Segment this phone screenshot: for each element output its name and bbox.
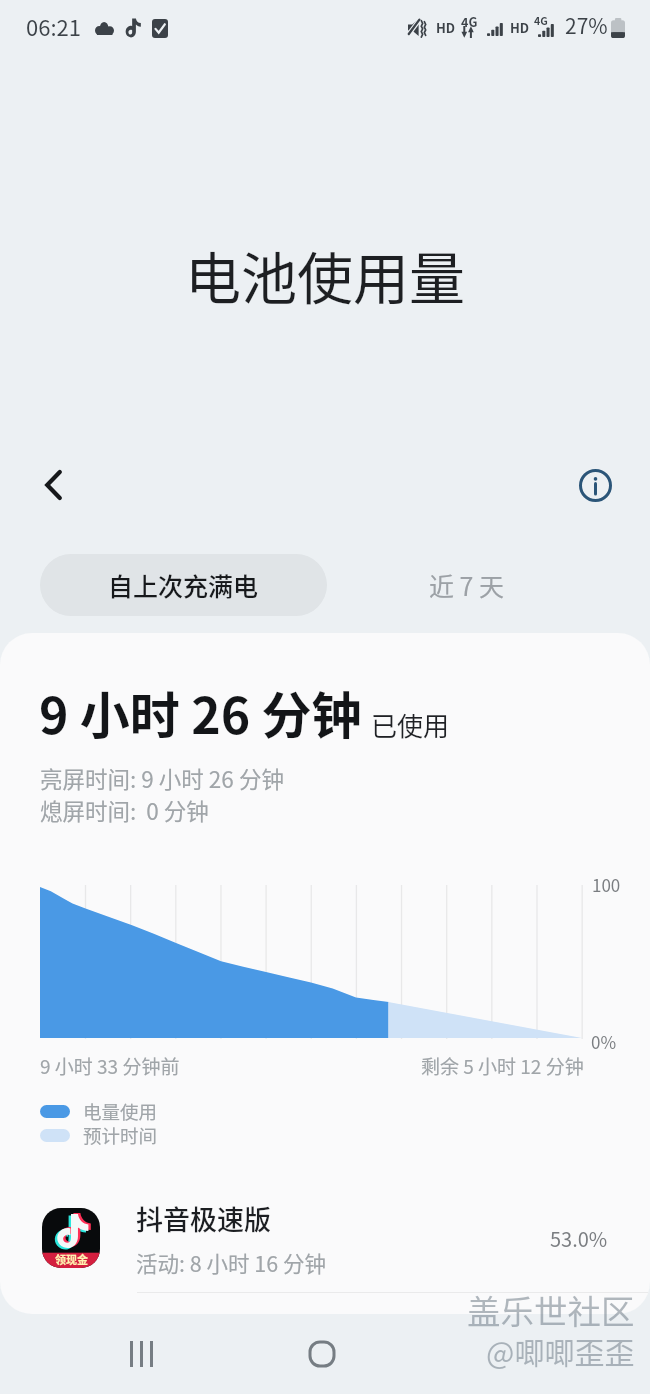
staticText: 盖乐世社区 [467,1285,635,1334]
staticText: 亮屏时间: 9 小时 26 分钟 [40,762,284,795]
staticText: HD [510,18,530,37]
staticText: HD [436,18,456,37]
staticText: 电池使用量 [185,234,465,315]
staticText: 4G [534,13,548,28]
staticText: 领现金 [55,1251,88,1267]
staticText: 预计时间 [83,1122,158,1149]
button[interactable]: 领现金 [0,1184,650,1292]
staticText: 4G [461,12,478,30]
staticText: 熄屏时间: 0 分钟 [40,794,209,827]
button[interactable]: Information [562,452,628,518]
staticText: 近 7 天 [429,567,505,603]
button[interactable]: Recent apps [109,1322,173,1386]
staticText: 自上次充满电 [108,567,259,603]
staticText: 53.0% [550,1224,608,1253]
staticText: 活动: 8 小时 16 分钟 [136,1247,327,1278]
button[interactable]: 自上次充满电 [40,554,327,616]
button[interactable]: Back [20,452,86,518]
staticText: @唧唧歪歪 [486,1329,635,1372]
staticText: 0% [591,1029,617,1054]
staticText: 剩余 5 小时 12 分钟 [421,1052,584,1080]
staticText: 27% [565,10,608,40]
staticText: 9 小时 26 分钟 [39,676,362,748]
staticText: 100 [592,872,621,897]
staticText: 06:21 [26,10,81,42]
staticText: 抖音极速版 [136,1199,271,1238]
staticText: 电量使用 [83,1098,158,1125]
staticText: 9 小时 33 分钟前 [40,1052,180,1080]
button[interactable]: Home [290,1322,354,1386]
button[interactable]: 近 7 天 [323,554,610,616]
staticText: 已使用 [371,706,450,744]
